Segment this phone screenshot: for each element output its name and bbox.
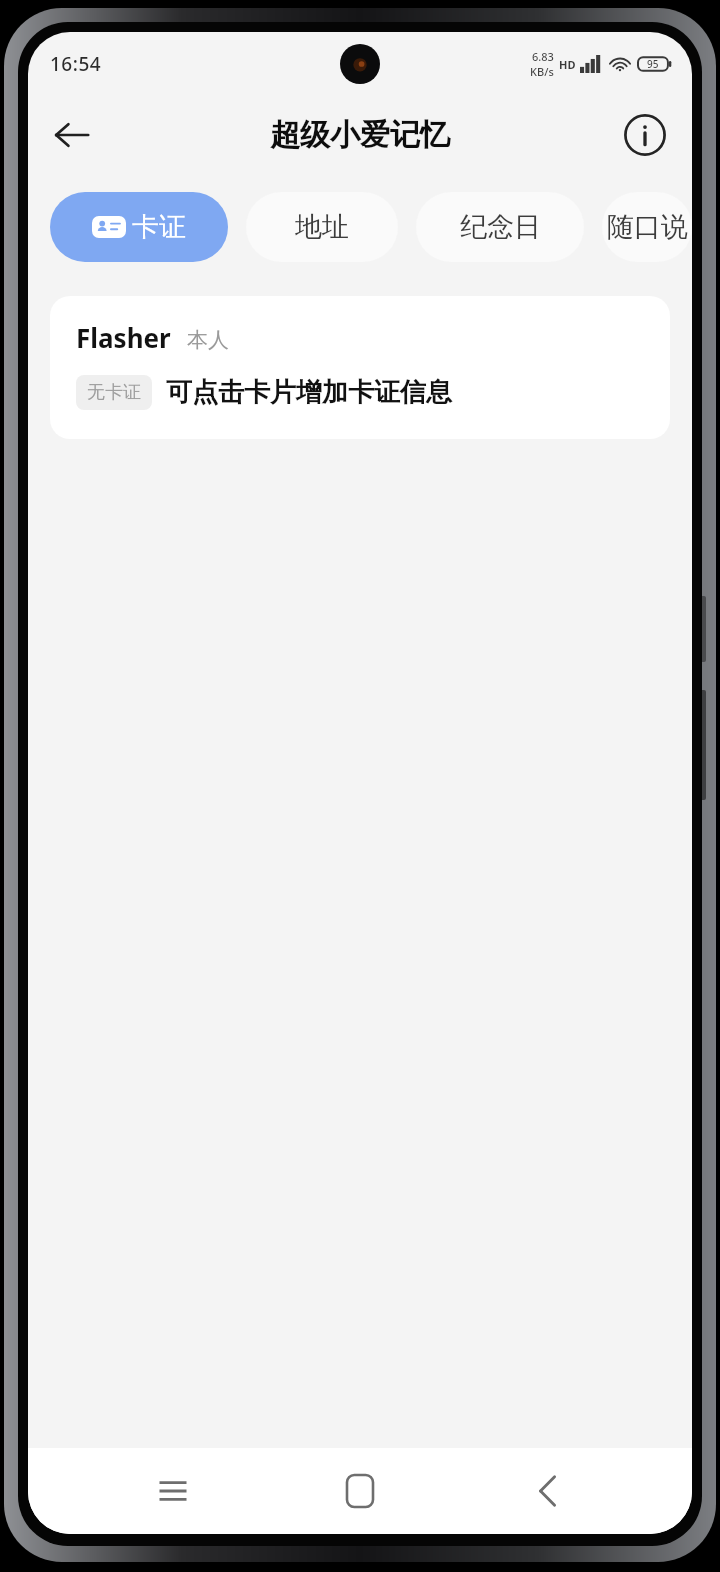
staticText: 6.83 xyxy=(532,49,554,64)
staticText: 随口说 xyxy=(607,210,688,244)
button[interactable]: Back xyxy=(46,109,98,161)
button[interactable]: 纪念日 xyxy=(416,192,584,262)
button[interactable]: Info xyxy=(620,110,670,160)
staticText: Flasher xyxy=(76,320,171,355)
staticText: 超级小爱记忆 xyxy=(270,116,450,154)
button[interactable]: Home xyxy=(317,1448,403,1534)
staticText: 卡证 xyxy=(132,210,186,244)
button[interactable]: 地址 xyxy=(246,192,398,262)
staticText: KB/s xyxy=(530,64,554,79)
staticText: HD xyxy=(559,57,576,72)
staticText: 本人 xyxy=(187,327,229,353)
button[interactable]: Recent apps xyxy=(130,1448,216,1534)
staticText: 可点击卡片增加卡证信息 xyxy=(166,376,452,409)
staticText: 地址 xyxy=(295,210,349,244)
staticText: 16:54 xyxy=(50,51,102,77)
staticText: 无卡证 xyxy=(87,381,141,404)
button[interactable]: Back xyxy=(505,1448,591,1534)
button[interactable]: Flasher xyxy=(50,296,670,439)
staticText: 纪念日 xyxy=(460,210,541,244)
button[interactable]: 卡证 xyxy=(50,192,228,262)
button[interactable]: 随口说 xyxy=(602,192,692,262)
staticText: 95 xyxy=(647,57,659,71)
